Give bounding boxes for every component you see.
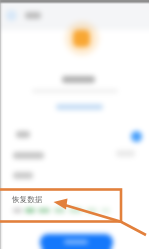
button[interactable] bbox=[0, 0, 149, 30]
staticText: 恢复数据 bbox=[12, 195, 43, 205]
button[interactable]: 恢复数据 bbox=[12, 195, 43, 205]
